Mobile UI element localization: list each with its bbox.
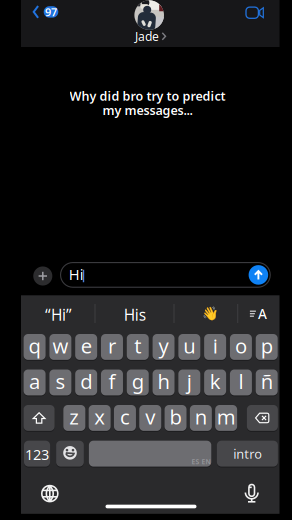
button[interactable]: Return [217,441,278,467]
staticText: A [258,304,267,323]
button[interactable]: a [24,369,46,395]
button[interactable]: f [101,369,123,395]
button[interactable]: Delete [247,405,278,431]
staticText: a [29,367,40,395]
staticText: d [80,367,92,395]
button[interactable]: Jade, conversation details [126,0,172,44]
button[interactable]: i [204,334,226,360]
staticText: q [29,332,41,359]
staticText: 123 [25,444,49,464]
staticText: n [195,403,207,430]
staticText: r [108,332,116,359]
button[interactable]: l [230,369,252,395]
button[interactable]: “Hi” [23,298,93,332]
button[interactable]: FaceTime [245,6,265,20]
staticText: z [69,403,79,430]
staticText: e [81,332,92,359]
staticText: Hi [69,264,84,284]
staticText: f [108,367,115,395]
staticText: m [217,403,236,430]
button[interactable]: v [139,405,161,431]
staticText: Why did bro try to predict [70,87,226,104]
button[interactable]: z [63,405,85,431]
staticText: j [187,367,192,395]
staticText: t [134,332,141,359]
button[interactable]: e [75,334,97,360]
button[interactable]: k [204,369,226,395]
staticText: “Hi” [45,304,72,325]
button[interactable]: o [230,334,252,360]
staticText: 👋 [202,306,219,321]
staticText: h [157,367,169,395]
button[interactable]: t [127,334,149,360]
button[interactable]: p [256,334,278,360]
button[interactable]: His [97,298,172,332]
staticText: 97 [45,4,57,19]
staticText: i [213,332,218,359]
staticText: Jade [135,28,159,44]
staticText: w [52,332,68,359]
staticText: ES EN [191,457,210,466]
button[interactable]: Send [249,265,268,285]
staticText: my messages... [103,102,193,119]
staticText: l [238,367,243,395]
button[interactable]: s [49,369,71,395]
button[interactable]: Next keyboard [38,482,62,506]
staticText: x [94,403,105,430]
staticText: c [120,403,130,430]
staticText: g [132,367,144,395]
button[interactable]: m [215,405,237,431]
button[interactable]: 123 [24,441,50,467]
button[interactable]: Apps [33,266,52,285]
button[interactable]: Waving hand emoji [180,297,240,331]
button[interactable]: u [178,334,200,360]
button[interactable]: c [114,405,136,431]
staticText: y [158,332,168,359]
staticText: k [210,367,221,395]
button[interactable]: y [152,334,174,360]
button[interactable]: q [24,334,46,360]
button[interactable]: b [165,405,187,431]
staticText: o [235,332,247,359]
staticText: u [183,332,195,359]
button[interactable]: Writing tools [239,297,277,331]
button[interactable]: r [101,334,123,360]
button[interactable]: h [152,369,174,395]
staticText: v [145,403,155,430]
button[interactable]: w [49,334,71,360]
button[interactable]: Back [30,3,60,21]
button[interactable]: ñ [256,369,278,395]
button[interactable]: d [75,369,97,395]
staticText: intro [233,445,262,462]
button[interactable]: Dictation [242,481,262,505]
button[interactable]: Shift [24,405,55,431]
staticText: His [124,304,146,325]
staticText: ñ [261,367,273,395]
button[interactable]: x [89,405,111,431]
button[interactable]: Emoji [56,441,84,467]
button[interactable]: Space [89,441,211,467]
staticText: p [261,332,273,359]
staticText: s [55,367,65,395]
button[interactable]: n [190,405,212,431]
button[interactable]: g [127,369,149,395]
button[interactable]: j [178,369,200,395]
button[interactable]: Message field [61,262,270,287]
staticText: b [170,403,182,430]
